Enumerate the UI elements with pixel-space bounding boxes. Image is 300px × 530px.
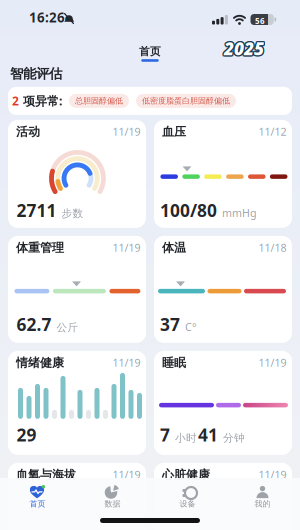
- staticText: 项异常:: [19, 93, 65, 109]
- staticText: 我的: [254, 499, 270, 509]
- staticText: 11/19: [112, 124, 140, 139]
- button[interactable]: 首页: [139, 45, 161, 62]
- staticText: 首页: [29, 499, 45, 509]
- button[interactable]: 数据: [75, 485, 150, 519]
- staticText: 设备: [179, 499, 195, 509]
- staticText: 2025: [223, 38, 263, 61]
- staticText: 62.7: [16, 313, 51, 336]
- button[interactable]: 心脏健康: [154, 463, 292, 530]
- button[interactable]: 睡眠: [154, 351, 292, 455]
- staticText: C°: [185, 320, 197, 334]
- staticText: 56: [255, 16, 265, 26]
- button[interactable]: 活动: [8, 120, 146, 228]
- staticText: 智能评估: [10, 65, 62, 82]
- staticText: 37: [160, 313, 180, 336]
- staticText: 体温: [162, 240, 186, 255]
- staticText: 2025: [223, 37, 263, 60]
- staticText: mmHg: [222, 206, 257, 220]
- button[interactable]: 体重管理: [8, 236, 146, 343]
- staticText: 11/19: [112, 240, 140, 255]
- staticText: 11/12: [258, 124, 286, 139]
- staticText: 首页: [139, 45, 161, 58]
- staticText: 7: [160, 423, 170, 446]
- button[interactable]: 2: [8, 87, 292, 115]
- staticText: 活动: [16, 124, 40, 139]
- staticText: 分钟: [223, 431, 245, 445]
- staticText: 11/18: [258, 240, 286, 255]
- button[interactable]: 我的: [225, 485, 300, 519]
- button[interactable]: 情绪健康: [8, 351, 146, 455]
- staticText: 2025: [225, 37, 265, 60]
- staticText: 2025: [224, 38, 264, 61]
- button[interactable]: 首页: [0, 485, 75, 519]
- staticText: 血氧与海拔: [16, 467, 76, 482]
- staticText: 2025: [225, 38, 265, 61]
- staticText: 2025: [224, 37, 264, 60]
- staticText: 41: [198, 423, 218, 446]
- staticText: 数据: [104, 499, 120, 509]
- button[interactable]: 血压: [154, 120, 292, 228]
- staticText: 11/19: [112, 467, 140, 482]
- staticText: 血压: [162, 124, 186, 139]
- staticText: 11/19: [258, 467, 286, 482]
- staticText: 小时: [175, 431, 197, 445]
- staticText: 睡眠: [162, 355, 186, 370]
- staticText: 公斤: [56, 321, 78, 334]
- staticText: 2711: [16, 199, 56, 222]
- staticText: 步数: [61, 207, 83, 220]
- button[interactable]: 血氧与海拔: [8, 463, 146, 530]
- button[interactable]: 设备: [150, 485, 225, 519]
- staticText: 2025: [224, 36, 264, 59]
- staticText: 11/19: [112, 355, 140, 370]
- staticText: 2: [12, 93, 19, 109]
- staticText: 体重管理: [16, 240, 64, 255]
- staticText: 100/80: [160, 199, 217, 222]
- button[interactable]: 体温: [154, 236, 292, 343]
- staticText: 16:26: [29, 8, 65, 26]
- staticText: 总胆固醇偏低: [75, 96, 123, 106]
- staticText: 低密度脂蛋白胆固醇偏低: [142, 96, 230, 106]
- staticText: 2025: [223, 36, 263, 59]
- staticText: 心脏健康: [162, 467, 210, 482]
- staticText: 11/19: [258, 355, 286, 370]
- staticText: 2025: [225, 36, 265, 59]
- staticText: 29: [16, 423, 36, 446]
- staticText: 情绪健康: [16, 355, 64, 370]
